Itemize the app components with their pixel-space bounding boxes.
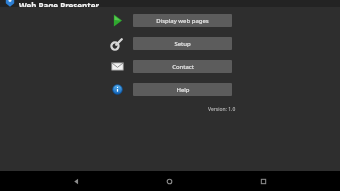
button[interactable]: Home: [152, 171, 186, 191]
staticText: Version: 1.0: [208, 106, 236, 113]
button[interactable]: Setup: [133, 37, 232, 50]
button[interactable]: Contact: [133, 60, 232, 73]
button[interactable]: Recent apps: [246, 171, 280, 191]
button[interactable]: Setup: [109, 35, 126, 52]
staticText: Contact: [172, 63, 194, 71]
button[interactable]: Display web pages: [109, 12, 126, 29]
button[interactable]: Display web pages: [133, 14, 232, 27]
button[interactable]: Help: [133, 83, 232, 96]
button[interactable]: Back: [59, 171, 93, 191]
staticText: Help: [176, 86, 190, 94]
staticText: Display web pages: [156, 17, 209, 25]
staticText: Setup: [174, 40, 191, 48]
button[interactable]: Help: [109, 81, 126, 98]
button[interactable]: Contact: [109, 58, 126, 75]
staticText: Web Page Presenter: [19, 0, 100, 7]
